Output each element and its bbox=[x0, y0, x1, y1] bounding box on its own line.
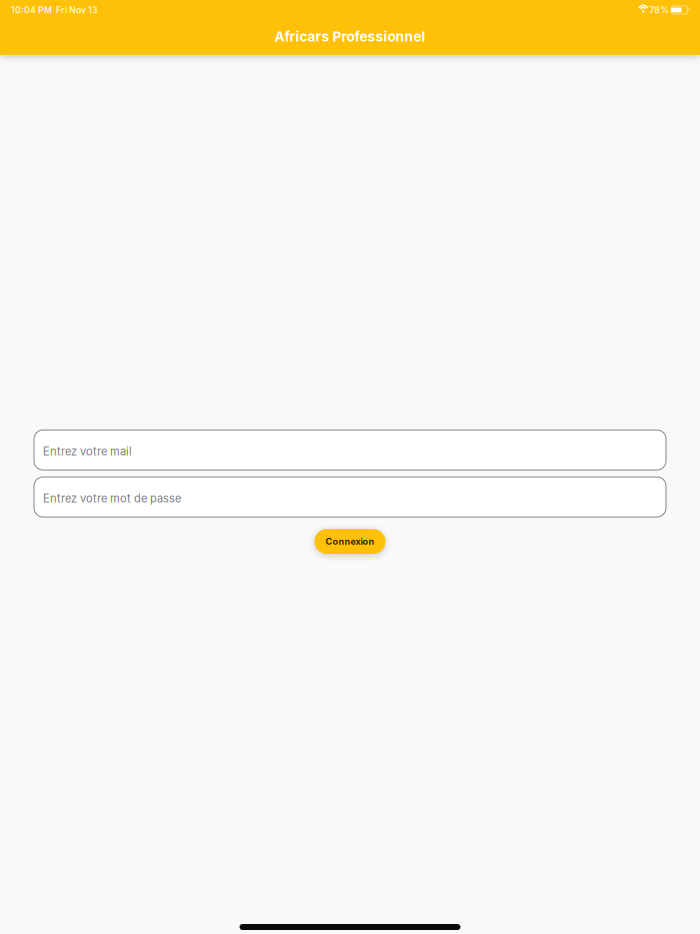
staticText: 10:04 PM bbox=[11, 5, 52, 15]
button[interactable]: Entrez votre mot de passe bbox=[34, 477, 666, 517]
staticText: Entrez votre mot de passe bbox=[43, 492, 181, 505]
button[interactable]: Connexion bbox=[314, 529, 385, 554]
staticText: Connexion bbox=[325, 536, 374, 547]
staticText: Entrez votre mail bbox=[43, 445, 132, 458]
button[interactable]: Entrez votre mail bbox=[34, 430, 666, 470]
staticText: Africars Professionnel bbox=[274, 28, 425, 45]
staticText: Fri Nov 13 bbox=[56, 5, 98, 15]
staticText: 78% bbox=[649, 5, 669, 15]
